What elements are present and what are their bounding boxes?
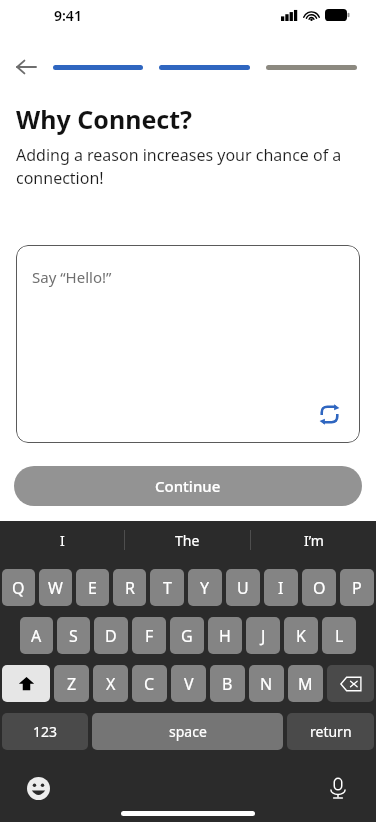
staticText: T	[163, 577, 172, 599]
staticText: K	[296, 625, 306, 647]
button[interactable]: R	[113, 569, 146, 606]
button[interactable]: Continue	[14, 466, 362, 506]
button[interactable]: Shift	[2, 665, 50, 702]
staticText: Adding a reason increases your chance of…	[16, 144, 360, 189]
button[interactable]: Q	[2, 569, 35, 606]
staticText: C	[144, 673, 155, 695]
staticText: E	[88, 577, 97, 599]
button[interactable]: G	[170, 617, 204, 654]
staticText: O	[313, 577, 326, 599]
button[interactable]: Emoji	[22, 772, 54, 804]
button[interactable]: The	[125, 521, 250, 559]
staticText: H	[219, 625, 231, 647]
button[interactable]: M	[288, 665, 323, 702]
staticText: U	[237, 577, 249, 599]
button[interactable]: Back	[10, 54, 42, 80]
staticText: V	[184, 673, 194, 695]
staticText: A	[31, 625, 42, 647]
button[interactable]: N	[249, 665, 284, 702]
button[interactable]: Voice input	[322, 772, 354, 804]
staticText: R	[125, 577, 135, 599]
button[interactable]: Y	[188, 569, 222, 606]
button[interactable]: 123	[2, 713, 88, 750]
button[interactable]: F	[132, 617, 166, 654]
button[interactable]: P	[340, 569, 374, 606]
button[interactable]: J	[246, 617, 280, 654]
button[interactable]: D	[94, 617, 128, 654]
staticText: J	[261, 625, 266, 647]
button[interactable]: Shuffle suggestion	[312, 397, 346, 431]
staticText: Z	[67, 673, 77, 695]
staticText: Q	[12, 577, 25, 599]
staticText: S	[69, 625, 78, 647]
button[interactable]: space	[92, 713, 283, 750]
staticText: W	[48, 577, 63, 599]
staticText: Continue	[155, 476, 221, 496]
button[interactable]: I	[0, 521, 124, 559]
button[interactable]: return	[287, 713, 374, 750]
staticText: L	[335, 625, 344, 647]
button[interactable]: I’m	[251, 521, 376, 559]
staticText: P	[352, 577, 362, 599]
button[interactable]: K	[284, 617, 318, 654]
staticText: M	[298, 673, 313, 695]
button[interactable]: T	[150, 569, 184, 606]
staticText: Say “Hello!”	[32, 267, 112, 287]
button[interactable]: B	[210, 665, 245, 702]
button[interactable]: Say “Hello!”	[16, 245, 360, 443]
button[interactable]: X	[93, 665, 128, 702]
button[interactable]: O	[302, 569, 336, 606]
staticText: 123	[33, 722, 58, 741]
staticText: N	[260, 673, 273, 695]
staticText: X	[106, 673, 116, 695]
staticText: Y	[200, 577, 210, 599]
staticText: D	[105, 625, 117, 647]
button[interactable]: I	[264, 569, 298, 606]
staticText: B	[222, 673, 233, 695]
button[interactable]: S	[57, 617, 90, 654]
button[interactable]: V	[171, 665, 206, 702]
staticText: I	[278, 577, 284, 599]
staticText: The	[175, 531, 200, 550]
staticText: I	[60, 531, 65, 550]
staticText: F	[145, 625, 154, 647]
button[interactable]: E	[76, 569, 109, 606]
button[interactable]: W	[39, 569, 72, 606]
staticText: 9:41	[54, 6, 82, 25]
staticText: space	[169, 722, 207, 741]
staticText: I’m	[304, 531, 324, 550]
button[interactable]: C	[132, 665, 167, 702]
staticText: Why Connect?	[16, 102, 192, 136]
button[interactable]: Backspace	[327, 665, 374, 702]
button[interactable]: H	[208, 617, 242, 654]
button[interactable]: A	[20, 617, 53, 654]
staticText: G	[181, 625, 193, 647]
button[interactable]: Z	[54, 665, 89, 702]
button[interactable]: U	[226, 569, 260, 606]
staticText: return	[310, 722, 352, 741]
button[interactable]: L	[322, 617, 356, 654]
